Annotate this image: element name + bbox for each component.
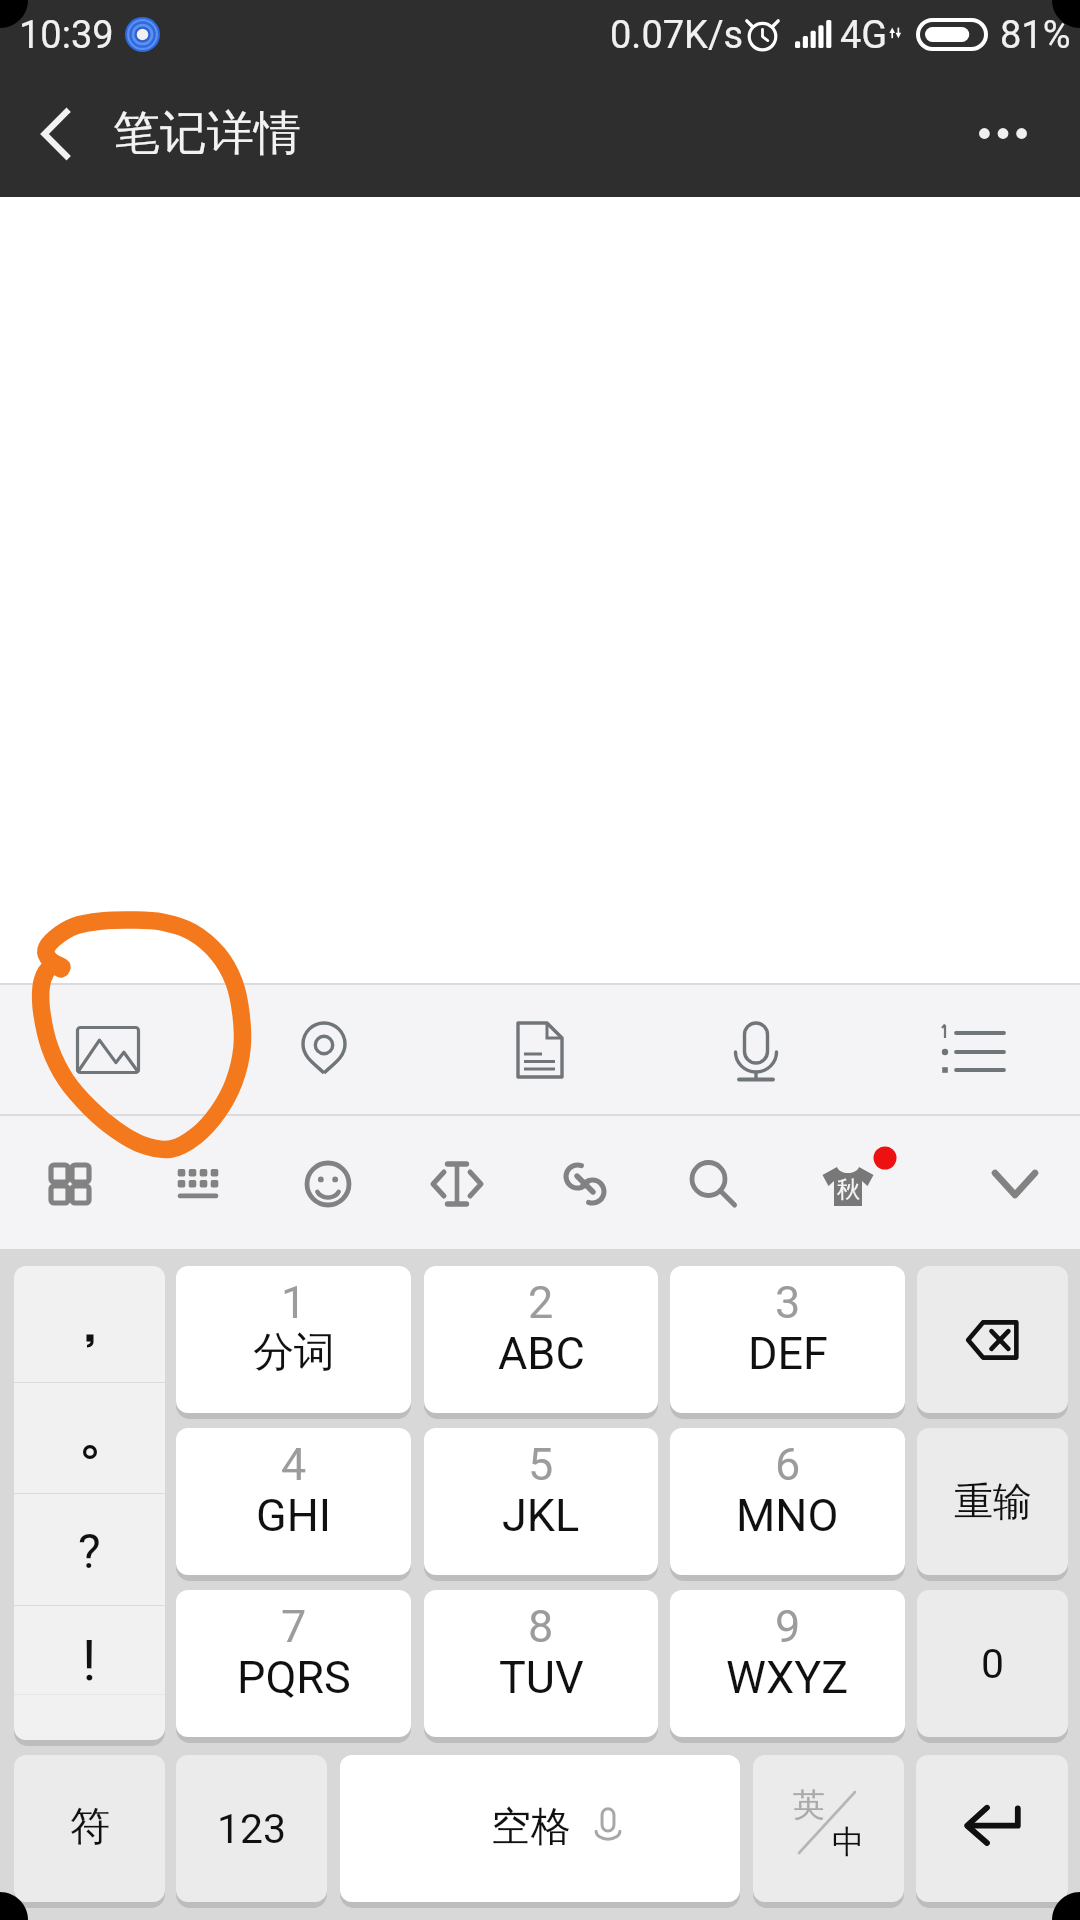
button[interactable]: 0 <box>917 1590 1068 1737</box>
staticText: 5 <box>528 1438 554 1491</box>
staticText: 1 <box>281 1276 307 1329</box>
staticText: 3 <box>775 1276 801 1329</box>
button[interactable]: Switch keyboard <box>138 1116 258 1249</box>
staticText: 英 <box>793 1785 825 1825</box>
button[interactable]: Location <box>216 983 432 1116</box>
button[interactable]: Insert image <box>0 983 216 1116</box>
button[interactable] <box>14 1266 165 1383</box>
button[interactable]: Move cursor <box>397 1116 517 1249</box>
staticText: 123 <box>217 1805 287 1853</box>
staticText: 笔记详情 <box>113 104 301 163</box>
button[interactable]: Switch language <box>753 1755 904 1902</box>
button[interactable]: Keyboard layouts <box>10 1116 130 1249</box>
button[interactable]: Backspace <box>917 1266 1068 1413</box>
staticText: 9 <box>775 1600 801 1653</box>
staticText: 8 <box>528 1600 554 1653</box>
staticText: DEF <box>748 1327 828 1380</box>
button[interactable]: 4 <box>176 1428 411 1575</box>
button[interactable]: More options <box>939 70 1066 197</box>
staticText: 4 <box>281 1438 307 1491</box>
staticText: MNO <box>736 1489 839 1542</box>
button[interactable]: Checklist <box>864 983 1080 1116</box>
staticText: 7 <box>281 1600 307 1653</box>
button[interactable]: Document <box>432 983 648 1116</box>
staticText: 中 <box>832 1822 864 1862</box>
button[interactable]: 空格 <box>340 1755 740 1902</box>
staticText: 0 <box>981 1640 1005 1688</box>
staticText: 空格 <box>491 1801 571 1851</box>
staticText: 4G <box>840 13 888 58</box>
staticText: GHI <box>256 1489 331 1542</box>
staticText: ABC <box>498 1327 585 1380</box>
button[interactable]: 重输 <box>917 1428 1068 1575</box>
button[interactable]: 2 <box>424 1266 658 1413</box>
staticText: 10:39 <box>19 13 114 58</box>
button[interactable]: 9 <box>670 1590 905 1737</box>
staticText: 分词 <box>253 1327 335 1379</box>
staticText: 符 <box>70 1801 110 1851</box>
button[interactable]: Emoji <box>268 1116 388 1249</box>
button[interactable]: Hide keyboard <box>955 1116 1075 1249</box>
staticText: 2 <box>528 1276 554 1329</box>
staticText: WXYZ <box>726 1651 849 1704</box>
button[interactable]: 3 <box>670 1266 905 1413</box>
staticText: JKL <box>502 1489 580 1542</box>
button[interactable]: Enter <box>916 1755 1068 1902</box>
button[interactable]: 8 <box>424 1590 658 1737</box>
button[interactable]: Themes <box>788 1116 908 1249</box>
button[interactable]: 1 <box>176 1266 411 1413</box>
staticText: 81% <box>1000 13 1071 58</box>
button[interactable]: 6 <box>670 1428 905 1575</box>
staticText: PQRS <box>237 1651 351 1704</box>
staticText: 秋 <box>837 1175 860 1204</box>
staticText: TUV <box>499 1651 584 1704</box>
button[interactable]: Voice note <box>648 983 864 1116</box>
staticText: ? <box>78 1523 101 1579</box>
staticText: ! <box>82 1628 97 1694</box>
button[interactable]: 123 <box>176 1755 327 1902</box>
button[interactable]: ! <box>14 1606 165 1740</box>
staticText: 6 <box>775 1438 801 1491</box>
button[interactable]: ? <box>14 1494 165 1606</box>
button[interactable] <box>14 1383 165 1494</box>
button[interactable]: 7 <box>176 1590 411 1737</box>
button[interactable]: Insert link <box>525 1116 645 1249</box>
button[interactable]: 5 <box>424 1428 658 1575</box>
button[interactable]: Search <box>652 1116 772 1249</box>
button[interactable]: 符 <box>14 1755 165 1902</box>
staticText: 重输 <box>954 1477 1032 1526</box>
staticText: 0.07K/s <box>610 13 744 58</box>
button[interactable]: Back <box>0 70 110 197</box>
